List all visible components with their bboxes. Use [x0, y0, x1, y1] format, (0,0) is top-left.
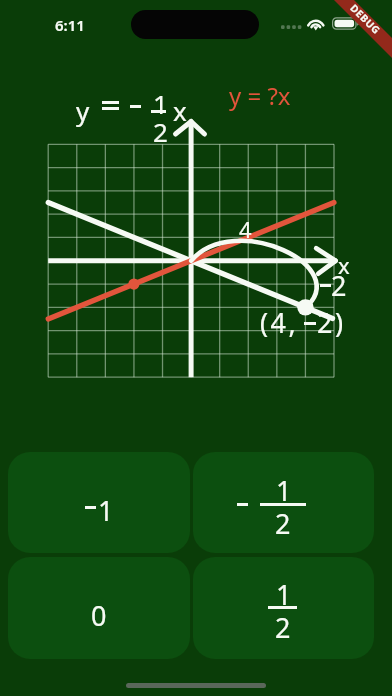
- button[interactable]: one half: [193, 557, 374, 659]
- staticText: 1: [276, 576, 292, 613]
- staticText: 1: [98, 492, 114, 529]
- staticText: DEBUG: [347, 1, 384, 37]
- staticText: 4: [239, 214, 252, 244]
- button[interactable]: zero: [8, 557, 190, 659]
- staticText: 1: [276, 472, 292, 509]
- staticText: 0: [91, 597, 107, 634]
- staticText: 2: [275, 505, 291, 542]
- staticText: 2: [275, 609, 291, 646]
- staticText: y: [76, 93, 90, 128]
- staticText: 6:11: [55, 15, 85, 35]
- button[interactable]: minus one: [8, 452, 190, 553]
- staticText: x: [173, 93, 187, 128]
- staticText: (4,: [260, 304, 299, 341]
- staticText: 2): [317, 304, 346, 341]
- staticText: y = ?x: [229, 79, 291, 112]
- button[interactable]: minus one half: [193, 452, 374, 553]
- staticText: 1: [153, 86, 168, 121]
- staticText: 2: [153, 114, 168, 149]
- staticText: x: [338, 250, 350, 280]
- staticText: 2: [331, 267, 347, 304]
